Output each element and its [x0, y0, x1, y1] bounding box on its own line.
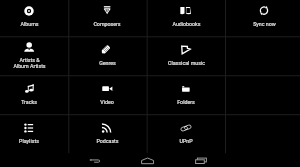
button[interactable]: Classical music [147, 36, 225, 75]
staticText: Audiobooks [172, 21, 201, 27]
staticText: Classical music [168, 60, 205, 66]
staticText: Composers [93, 21, 121, 27]
button[interactable]: Audiobooks [147, 0, 225, 36]
button[interactable]: Tracks [0, 75, 68, 114]
button[interactable]: Video [68, 75, 146, 114]
staticText: Tracks [21, 99, 37, 105]
staticText: Genres [99, 60, 116, 66]
button[interactable]: Albums [0, 0, 68, 36]
staticText: Video [100, 99, 114, 105]
button[interactable]: Home [141, 155, 155, 164]
staticText: Sync now [253, 21, 276, 27]
button[interactable]: Sync now [225, 0, 300, 36]
staticText: Folders [177, 99, 195, 105]
button[interactable]: Composers [68, 0, 146, 36]
button[interactable]: Recent apps [194, 155, 208, 164]
staticText: Podcasts [96, 138, 119, 144]
staticText: Albums [20, 21, 39, 27]
button[interactable]: Artists & Album Artists [0, 36, 68, 75]
staticText: Artists & Album Artists [13, 57, 46, 69]
button[interactable]: Genres [68, 36, 146, 75]
button[interactable]: Back [88, 155, 102, 164]
staticText: UPnP [179, 138, 193, 144]
staticText: Playlists [19, 138, 39, 144]
button[interactable]: UPnP [147, 114, 225, 153]
button[interactable]: Podcasts [68, 114, 146, 153]
button[interactable]: Playlists [0, 114, 68, 153]
button[interactable]: Folders [147, 75, 225, 114]
